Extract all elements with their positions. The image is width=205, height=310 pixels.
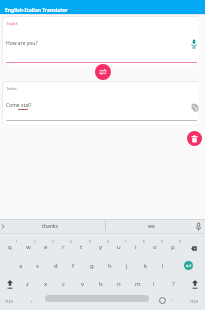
staticText: 9 (161, 240, 163, 244)
button[interactable] (194, 222, 203, 232)
button[interactable] (45, 295, 149, 302)
staticText: , (31, 297, 33, 304)
staticText: i (135, 243, 137, 251)
staticText: w (26, 243, 31, 251)
staticText: 6 (107, 240, 109, 244)
staticText: b (99, 280, 103, 288)
button[interactable] (187, 131, 202, 146)
staticText: h (108, 262, 112, 270)
button[interactable] (190, 39, 198, 49)
staticText: a (19, 262, 23, 270)
staticText: s (36, 262, 39, 270)
button[interactable]: English (3, 17, 199, 65)
button[interactable] (95, 64, 111, 80)
staticText: e (44, 243, 48, 251)
staticText: 5 (89, 240, 91, 244)
staticText: 8 (143, 240, 145, 244)
staticText: l (162, 262, 164, 270)
staticText: ! (153, 280, 155, 288)
button[interactable] (1, 224, 5, 229)
staticText: f (72, 262, 75, 270)
staticText: x (44, 280, 48, 288)
staticText: r (62, 243, 65, 251)
staticText: English (7, 22, 18, 26)
staticText: z (26, 280, 29, 288)
staticText: . (172, 295, 174, 302)
staticText: g (90, 262, 94, 270)
staticText: 3 (52, 240, 54, 244)
button[interactable] (184, 261, 193, 270)
staticText: ?123 (190, 299, 198, 304)
staticText: c (62, 280, 65, 288)
staticText: k (144, 262, 148, 270)
staticText: Italian (7, 87, 17, 91)
staticText: u (117, 243, 121, 251)
staticText: n (117, 280, 121, 288)
staticText: 2 (34, 240, 36, 244)
staticText: m (135, 280, 141, 288)
staticText: 4 (70, 240, 72, 244)
button[interactable]: Italian (3, 82, 199, 124)
staticText: 1 (16, 240, 18, 244)
button[interactable] (7, 280, 13, 289)
button[interactable] (191, 104, 199, 112)
staticText: thanks (42, 223, 58, 230)
staticText: t (80, 243, 83, 251)
staticText: v (81, 280, 85, 288)
button[interactable] (159, 297, 166, 304)
staticText: p (171, 243, 175, 251)
staticText: j (126, 262, 128, 270)
button[interactable] (192, 280, 198, 289)
staticText: 7 (125, 240, 127, 244)
staticText: English-Italian Translator (5, 7, 68, 14)
staticText: Come stai? (6, 102, 32, 109)
staticText: y (99, 243, 103, 251)
staticText: 0 (179, 240, 181, 244)
button[interactable]: English-Italian Translator (0, 0, 205, 14)
staticText: we (148, 223, 155, 230)
staticText: How are you? (6, 40, 38, 47)
staticText: ?123 (5, 299, 13, 304)
staticText: q (8, 243, 12, 251)
staticText: o (153, 243, 157, 251)
staticText: d (54, 262, 58, 270)
button[interactable] (191, 246, 197, 251)
staticText: ? (172, 280, 175, 288)
